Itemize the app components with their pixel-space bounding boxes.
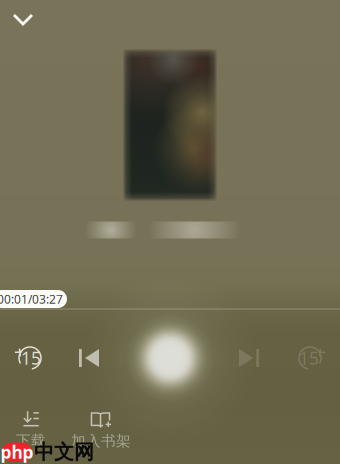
staticText: 15 <box>299 346 319 369</box>
button[interactable]: Playback position 00:01 of 03:27 <box>0 290 67 308</box>
button[interactable]: Play <box>114 302 226 414</box>
button[interactable]: 下载 <box>1 412 61 448</box>
button[interactable]: 加入书架 <box>66 412 136 448</box>
button[interactable]: Close player <box>0 0 46 40</box>
staticText: 中文网 <box>34 440 94 464</box>
button[interactable]: Previous chapter <box>68 330 118 386</box>
staticText: 00:01/03:27 <box>0 291 63 307</box>
staticText: php <box>0 440 33 463</box>
staticText: 下载 <box>16 431 46 449</box>
button[interactable]: Next chapter <box>220 330 270 386</box>
button[interactable]: Forward 15 seconds <box>282 330 338 386</box>
staticText: 加入书架 <box>71 432 131 450</box>
button[interactable]: Rewind 15 seconds <box>2 330 58 386</box>
staticText: 15 <box>21 346 41 369</box>
